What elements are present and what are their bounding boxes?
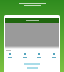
button[interactable]: Action: [8, 53, 12, 58]
button[interactable]: Action: [52, 53, 56, 58]
button[interactable]: [5, 18, 59, 23]
button[interactable]: [0, 3, 64, 6]
button[interactable]: Action: [23, 53, 27, 58]
button[interactable]: Action: [37, 53, 41, 58]
